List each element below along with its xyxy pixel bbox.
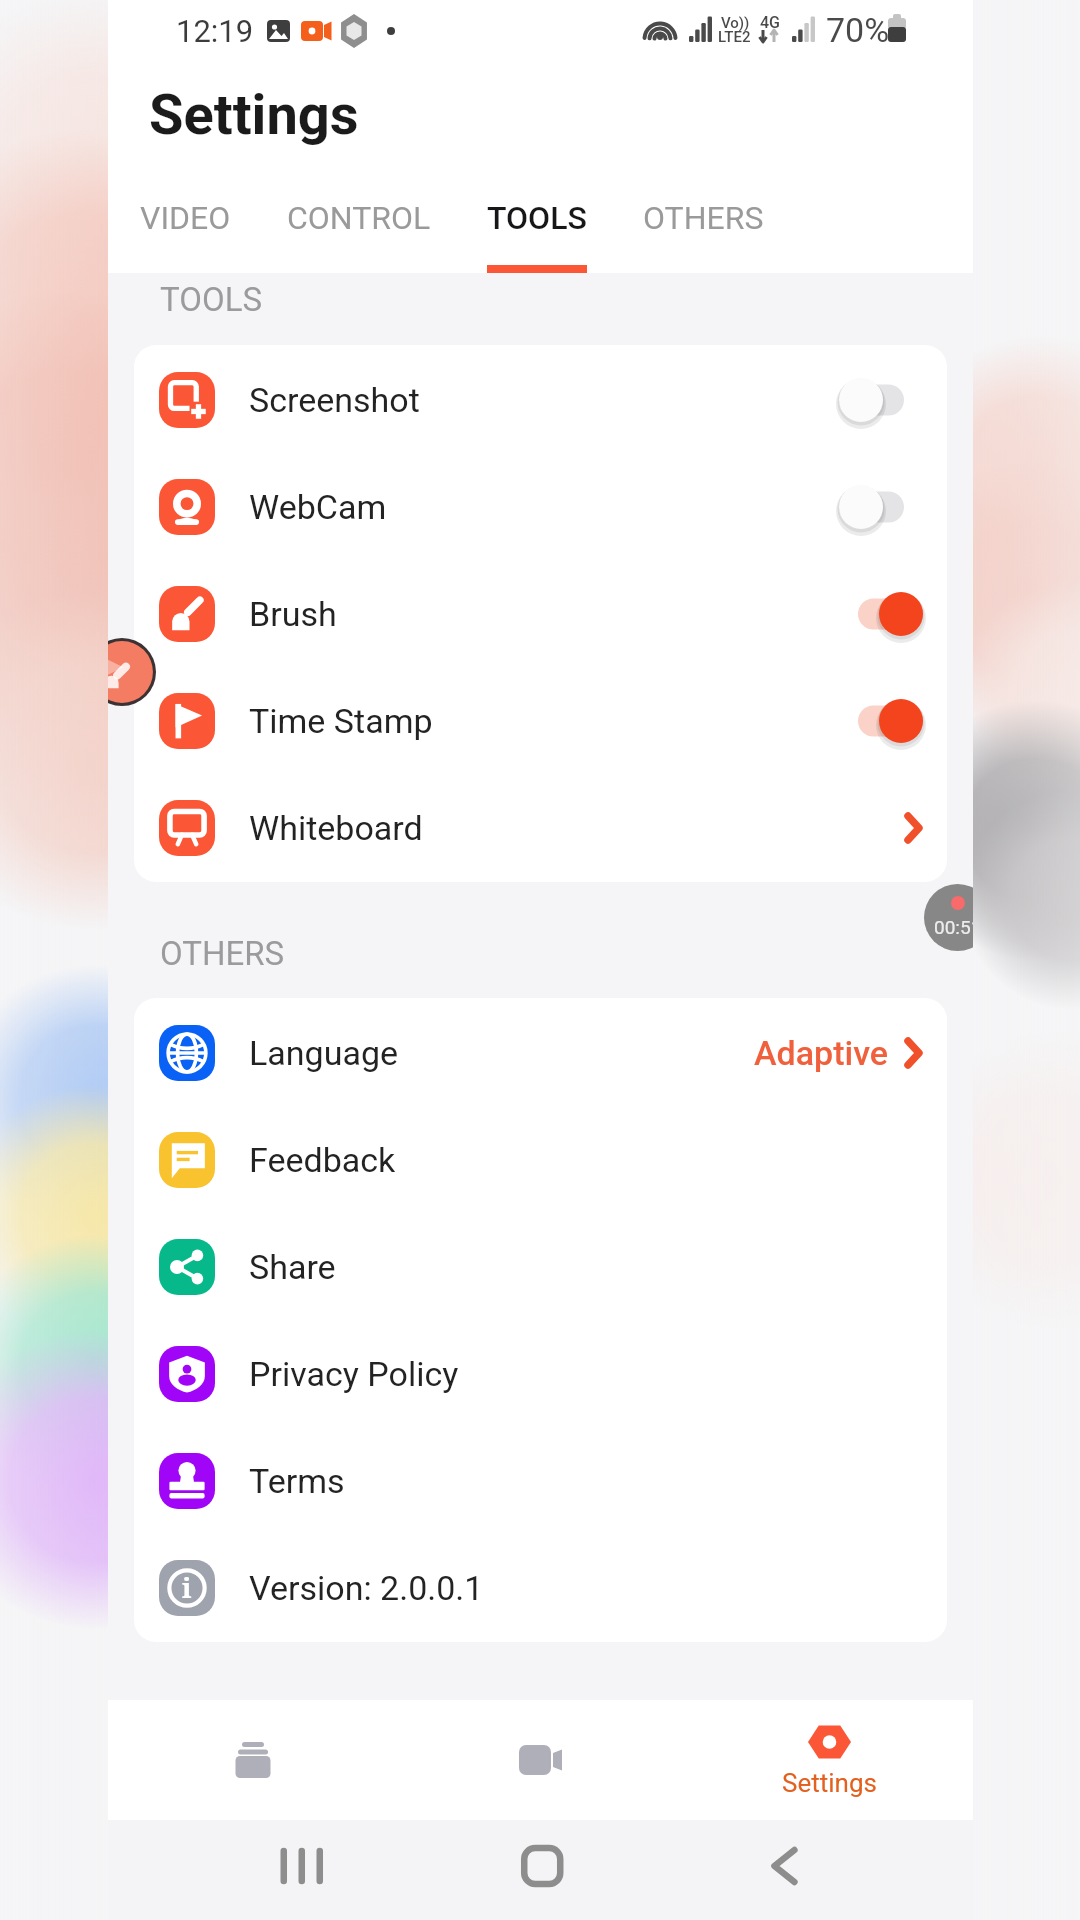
staticText: Time Stamp — [249, 701, 433, 741]
staticText: 12:19 — [176, 13, 254, 49]
staticText: LTE2 — [718, 28, 751, 46]
staticText: 00:51 — [934, 916, 973, 938]
staticText: OTHERS — [160, 934, 285, 973]
staticText: Privacy Policy — [249, 1354, 459, 1394]
button[interactable]: Record — [397, 1700, 685, 1820]
staticText: Vo)) — [721, 14, 750, 32]
staticText: Settings — [782, 1768, 877, 1798]
staticText: Brush — [249, 594, 337, 634]
staticText: 4G — [760, 13, 780, 32]
button[interactable]: Whiteboard — [134, 774, 947, 881]
staticText: Screenshot — [249, 380, 420, 420]
button[interactable]: Feedback — [134, 1106, 947, 1213]
button[interactable]: OTHERS — [615, 195, 792, 273]
staticText: VIDEO — [140, 199, 231, 237]
staticText: Share — [249, 1247, 336, 1287]
staticText: TOOLS — [160, 280, 263, 319]
staticText: TOOLS — [487, 199, 587, 237]
button[interactable]: Recording timer — [924, 884, 973, 951]
staticText: Whiteboard — [249, 808, 423, 848]
button[interactable]: Terms — [134, 1427, 947, 1534]
button[interactable]: Videos — [108, 1700, 397, 1820]
button[interactable]: Brush — [134, 560, 947, 667]
staticText: Adaptive — [754, 1033, 888, 1073]
staticText: CONTROL — [287, 199, 431, 237]
staticText: Terms — [249, 1461, 345, 1501]
button[interactable]: Screenshot — [134, 346, 947, 453]
staticText: Language — [249, 1033, 399, 1073]
staticText: i — [182, 1569, 192, 1606]
staticText: Feedback — [249, 1140, 396, 1180]
staticText: WebCam — [249, 487, 387, 527]
button[interactable]: TOOLS — [459, 195, 615, 273]
staticText: Settings — [149, 82, 359, 148]
staticText: 70% — [826, 10, 890, 50]
button[interactable]: CONTROL — [259, 195, 459, 273]
button[interactable]: Share — [134, 1213, 947, 1320]
button[interactable]: Time Stamp — [134, 667, 947, 774]
button[interactable]: VIDEO — [112, 195, 259, 273]
staticText: Version: 2.0.0.1 — [249, 1568, 484, 1608]
button[interactable]: Language — [134, 999, 947, 1106]
staticText: OTHERS — [643, 199, 764, 237]
button[interactable]: i — [134, 1534, 947, 1641]
button[interactable]: Brush tool — [108, 638, 156, 706]
button[interactable]: Settings — [685, 1700, 973, 1820]
button[interactable]: WebCam — [134, 453, 947, 560]
button[interactable]: Privacy Policy — [134, 1320, 947, 1427]
